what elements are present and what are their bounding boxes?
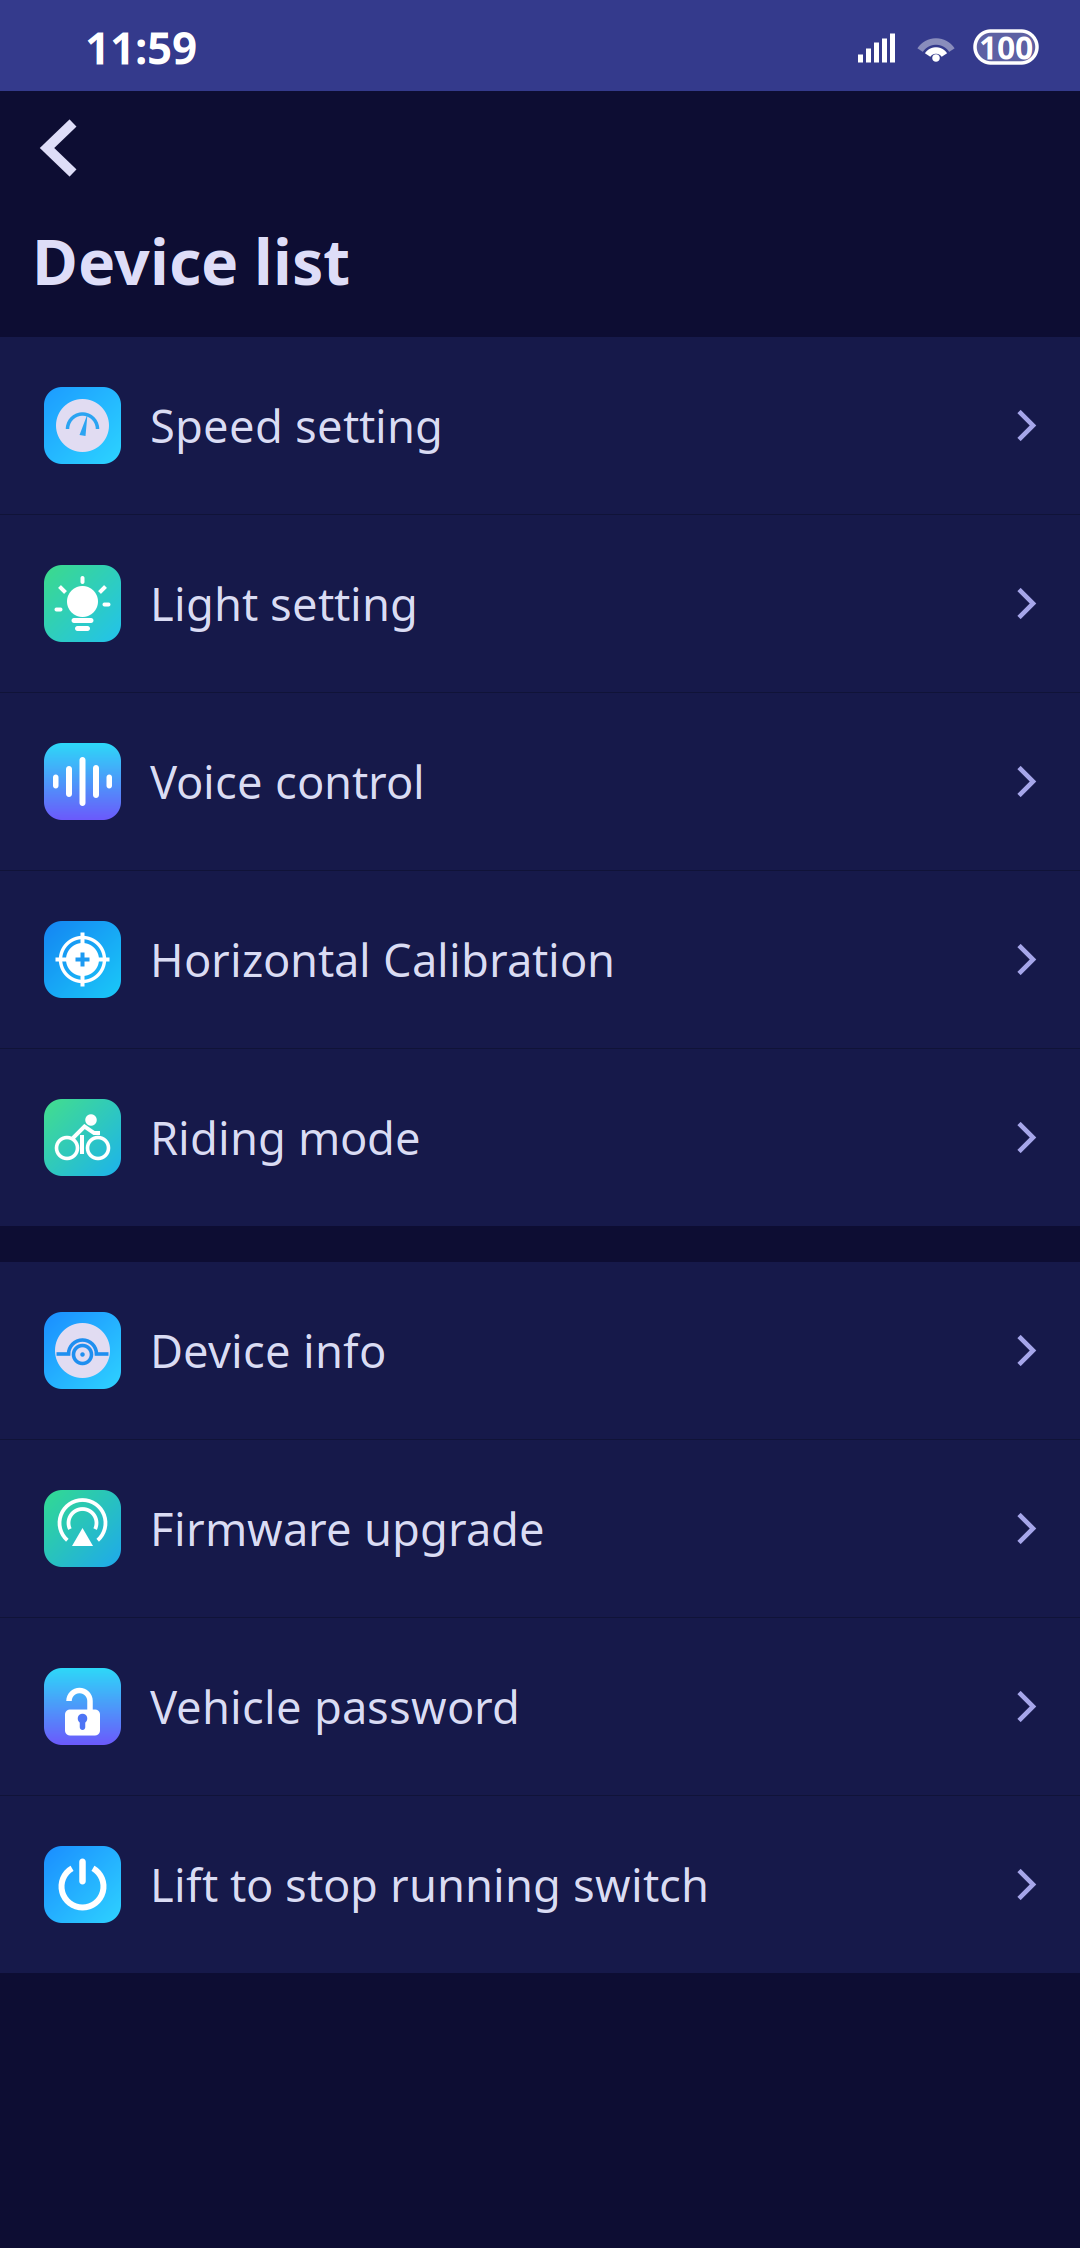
button[interactable]: Voice control: [0, 693, 1080, 870]
staticText: Device list: [32, 219, 350, 302]
staticText: Light setting: [150, 573, 418, 634]
staticText: Voice control: [150, 751, 425, 812]
staticText: Riding mode: [150, 1107, 421, 1168]
staticText: 11:59: [85, 18, 197, 77]
staticText: Horizontal Calibration: [150, 929, 615, 990]
button[interactable]: Light setting: [0, 515, 1080, 692]
button[interactable]: Back: [0, 106, 103, 190]
button[interactable]: Horizontal Calibration: [0, 871, 1080, 1048]
button[interactable]: Speed setting: [0, 337, 1080, 514]
staticText: Speed setting: [150, 395, 443, 456]
staticText: Lift to stop running switch: [150, 1854, 709, 1915]
button[interactable]: Firmware upgrade: [0, 1440, 1080, 1617]
button[interactable]: Device info: [0, 1262, 1080, 1439]
staticText: Firmware upgrade: [150, 1498, 545, 1559]
button[interactable]: Lift to stop running switch: [0, 1796, 1080, 1973]
staticText: Vehicle password: [150, 1676, 520, 1737]
button[interactable]: Riding mode: [0, 1049, 1080, 1226]
staticText: 100: [979, 26, 1033, 68]
button[interactable]: Vehicle password: [0, 1618, 1080, 1795]
staticText: Device info: [150, 1320, 386, 1381]
